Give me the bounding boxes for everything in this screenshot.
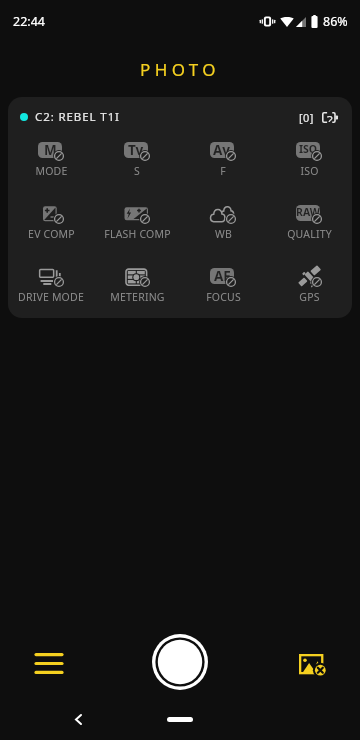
staticText: QUALITY — [287, 227, 332, 241]
staticText: ? — [327, 111, 333, 122]
button[interactable]: RAW — [266, 192, 352, 255]
staticText: 86% — [323, 13, 348, 30]
button[interactable]: Menu — [27, 641, 71, 685]
staticText: S — [134, 164, 140, 178]
button[interactable]: Shutter — [152, 634, 208, 690]
staticText: [0] — [299, 110, 314, 125]
staticText: DRIVE MODE — [18, 290, 84, 304]
staticText: ISO — [299, 142, 318, 156]
button[interactable]: WB — [180, 192, 266, 255]
button[interactable]: METERING — [94, 255, 180, 318]
button[interactable]: EV COMP — [8, 192, 94, 255]
button[interactable]: GPS — [266, 255, 352, 318]
button[interactable]: AF — [180, 255, 266, 318]
staticText: EV COMP — [28, 227, 75, 241]
button[interactable]: Tv — [94, 129, 180, 192]
staticText: 22:44 — [13, 13, 45, 30]
staticText: MODE — [35, 164, 68, 178]
staticText: RAW — [296, 205, 320, 219]
staticText: M — [44, 142, 57, 157]
button[interactable]: DRIVE MODE — [8, 255, 94, 318]
button[interactable]: Back — [66, 707, 90, 731]
button[interactable]: ISO — [266, 129, 352, 192]
staticText: PHOTO — [0, 58, 360, 81]
staticText: C2: REBEL T1I — [35, 109, 120, 125]
button[interactable]: Av — [180, 129, 266, 192]
button[interactable]: FLASH COMP — [94, 192, 180, 255]
staticText: GPS — [299, 290, 320, 304]
staticText: WB — [215, 227, 232, 241]
staticText: AF — [214, 268, 231, 283]
staticText: FOCUS — [206, 290, 241, 304]
staticText: METERING — [110, 290, 165, 304]
staticText: Tv — [128, 142, 144, 157]
staticText: Av — [213, 142, 231, 157]
staticText: ISO — [300, 164, 319, 178]
staticText: FLASH COMP — [104, 227, 171, 241]
button[interactable]: Gallery — [290, 643, 334, 687]
staticText: F — [220, 164, 226, 178]
button[interactable]: M — [8, 129, 94, 192]
